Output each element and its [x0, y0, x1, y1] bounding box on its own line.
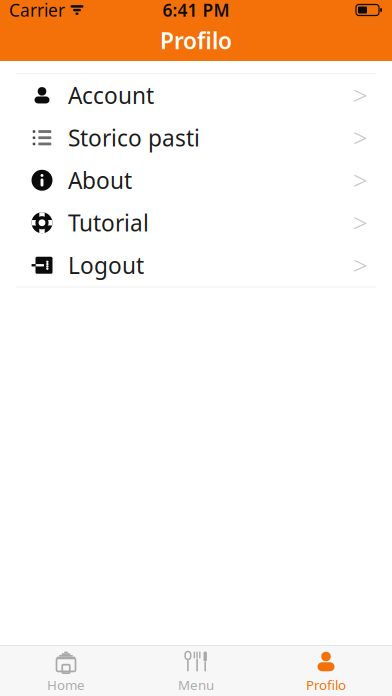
button[interactable]: Account [0, 74, 392, 116]
staticText: Menu [178, 676, 214, 694]
staticText: > [353, 206, 367, 239]
staticText: Profilo [306, 676, 346, 694]
button[interactable]: Profilo [261, 646, 391, 696]
staticText: > [353, 121, 367, 154]
staticText: > [353, 248, 367, 282]
staticText: > [353, 163, 367, 197]
staticText: Logout [68, 250, 144, 280]
staticText: About [68, 165, 132, 195]
staticText: Home [47, 676, 85, 694]
staticText: > [353, 78, 367, 112]
button[interactable]: Menu [131, 646, 261, 696]
button[interactable]: Storico pasti [0, 116, 392, 159]
button[interactable]: About [0, 159, 392, 201]
staticText: Profilo [160, 25, 232, 55]
staticText: Account [68, 80, 154, 110]
staticText: Tutorial [68, 208, 149, 238]
button[interactable]: Logout [0, 244, 392, 286]
staticText: 6:41 PM [162, 0, 229, 21]
button[interactable]: Tutorial [0, 201, 392, 244]
staticText: Carrier [9, 0, 65, 21]
staticText: Storico pasti [68, 123, 200, 153]
button[interactable]: Home [1, 646, 131, 696]
